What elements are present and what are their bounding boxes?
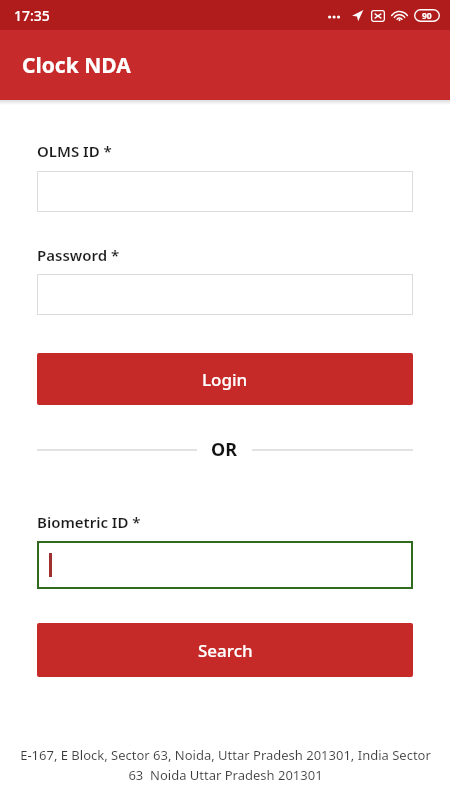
staticText: 17:35 bbox=[14, 6, 50, 25]
button[interactable] bbox=[37, 274, 413, 315]
staticText: Password * bbox=[37, 245, 120, 265]
staticText: 63 Noida Uttar Pradesh 201301 bbox=[128, 766, 323, 784]
staticText: Biometric ID * bbox=[37, 512, 141, 532]
staticText: Search bbox=[198, 639, 253, 662]
button[interactable] bbox=[37, 171, 413, 212]
staticText: OR bbox=[211, 437, 238, 462]
button[interactable]: Login bbox=[37, 353, 413, 405]
button[interactable]: Search bbox=[37, 623, 413, 677]
staticText: Login bbox=[202, 368, 248, 391]
staticText: E-167, E Block, Sector 63, Noida, Uttar … bbox=[20, 746, 431, 764]
staticText: 90 bbox=[422, 10, 432, 22]
staticText: OLMS ID * bbox=[37, 141, 112, 161]
button[interactable] bbox=[37, 541, 413, 589]
staticText: Clock NDA bbox=[22, 51, 131, 80]
